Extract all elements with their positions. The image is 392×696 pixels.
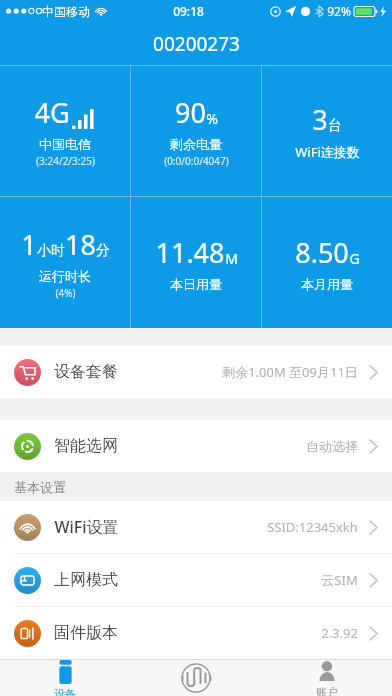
staticText: % — [206, 109, 218, 128]
staticText: 90 — [175, 94, 206, 131]
staticText: 8.50 — [295, 234, 349, 271]
staticText: 00200273 — [153, 31, 240, 57]
staticText: 上网模式 — [54, 570, 118, 590]
button[interactable]: 账户 — [261, 660, 392, 696]
staticText: 中国移动 — [42, 4, 90, 19]
button[interactable]: 上网模式 — [0, 554, 392, 607]
staticText: 本月用量 — [301, 276, 353, 292]
button[interactable]: 设备 — [0, 660, 130, 696]
staticText: 台 — [328, 117, 342, 135]
staticText: (0:0/0:0/4047) — [164, 154, 229, 168]
staticText: 账户 — [316, 685, 338, 696]
button[interactable]: 固件版本 — [0, 607, 392, 659]
button[interactable]: 扫描 — [130, 660, 261, 696]
staticText: 18 — [65, 226, 96, 263]
staticText: 小时 — [37, 242, 65, 260]
staticText: 固件版本 — [54, 623, 118, 643]
staticText: M — [225, 249, 238, 268]
button[interactable]: 智能选网 — [0, 420, 392, 472]
staticText: 智能选网 — [54, 436, 118, 456]
staticText: 云SIM — [321, 571, 358, 589]
staticText: 中国电信 — [39, 136, 91, 152]
staticText: 自动选择 — [306, 438, 358, 454]
staticText: 2.3.92 — [321, 624, 358, 642]
staticText: 设备 — [54, 687, 76, 696]
staticText: 4G — [34, 94, 70, 131]
staticText: 剩余1.00M 至09月11日 — [222, 363, 358, 381]
staticText: 11.48 — [155, 234, 225, 271]
staticText: 分 — [96, 242, 110, 260]
staticText: G — [349, 249, 360, 268]
staticText: 本日用量 — [170, 276, 222, 292]
staticText: 基本设置 — [14, 479, 66, 495]
staticText: 92% — [327, 3, 351, 19]
staticText: (3:24/2/3:25) — [36, 154, 95, 168]
button[interactable]: 设备套餐 — [0, 346, 392, 398]
staticText: 设备套餐 — [54, 362, 118, 382]
staticText: SSID:12345xkh — [267, 518, 358, 536]
staticText: 1 — [21, 226, 37, 263]
staticText: 剩余电量 — [170, 136, 222, 152]
staticText: 运行时长 — [39, 268, 91, 284]
staticText: WiFi连接数 — [295, 143, 360, 161]
staticText: WiFi设置 — [54, 516, 119, 538]
button[interactable]: WiFi设置 — [0, 501, 392, 554]
staticText: 3 — [312, 101, 328, 138]
staticText: (4%) — [55, 286, 76, 300]
staticText: 09:18 — [173, 3, 204, 19]
